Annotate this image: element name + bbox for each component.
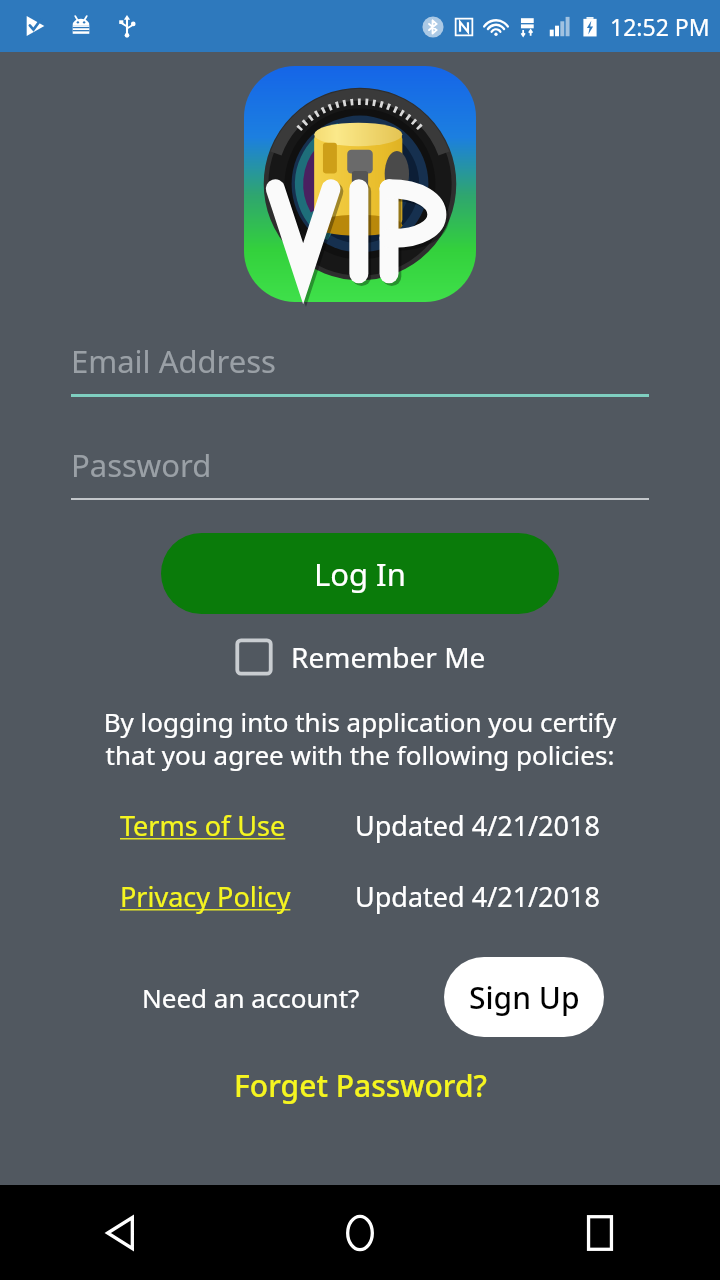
staticText: Forget Password? bbox=[234, 1065, 487, 1106]
button[interactable]: Recents bbox=[480, 1185, 720, 1280]
staticText: Terms of Use bbox=[120, 807, 286, 844]
staticText: Updated 4/21/2018 bbox=[355, 878, 600, 915]
staticText: Password bbox=[71, 444, 212, 486]
button[interactable]: Sign Up bbox=[444, 957, 604, 1037]
button[interactable]: Home bbox=[240, 1185, 480, 1280]
button[interactable]: Privacy Policy bbox=[120, 878, 291, 915]
button[interactable]: Back bbox=[0, 1185, 240, 1280]
staticText: Updated 4/21/2018 bbox=[355, 807, 600, 844]
button[interactable]: Need an account? bbox=[142, 980, 360, 1015]
staticText: Sign Up bbox=[469, 977, 580, 1018]
staticText: Remember Me bbox=[291, 638, 486, 676]
staticText: Privacy Policy bbox=[120, 878, 291, 915]
staticText: Email Address bbox=[71, 340, 276, 382]
button[interactable]: Log In bbox=[161, 533, 559, 614]
staticText: By logging into this application you cer… bbox=[80, 704, 640, 773]
button[interactable]: Terms of Use bbox=[120, 807, 286, 844]
staticText: 12:52 PM bbox=[610, 11, 710, 42]
button[interactable]: Forget Password? bbox=[228, 1059, 493, 1112]
staticText: Log In bbox=[314, 553, 406, 595]
button[interactable]: Remember Me bbox=[227, 632, 494, 682]
